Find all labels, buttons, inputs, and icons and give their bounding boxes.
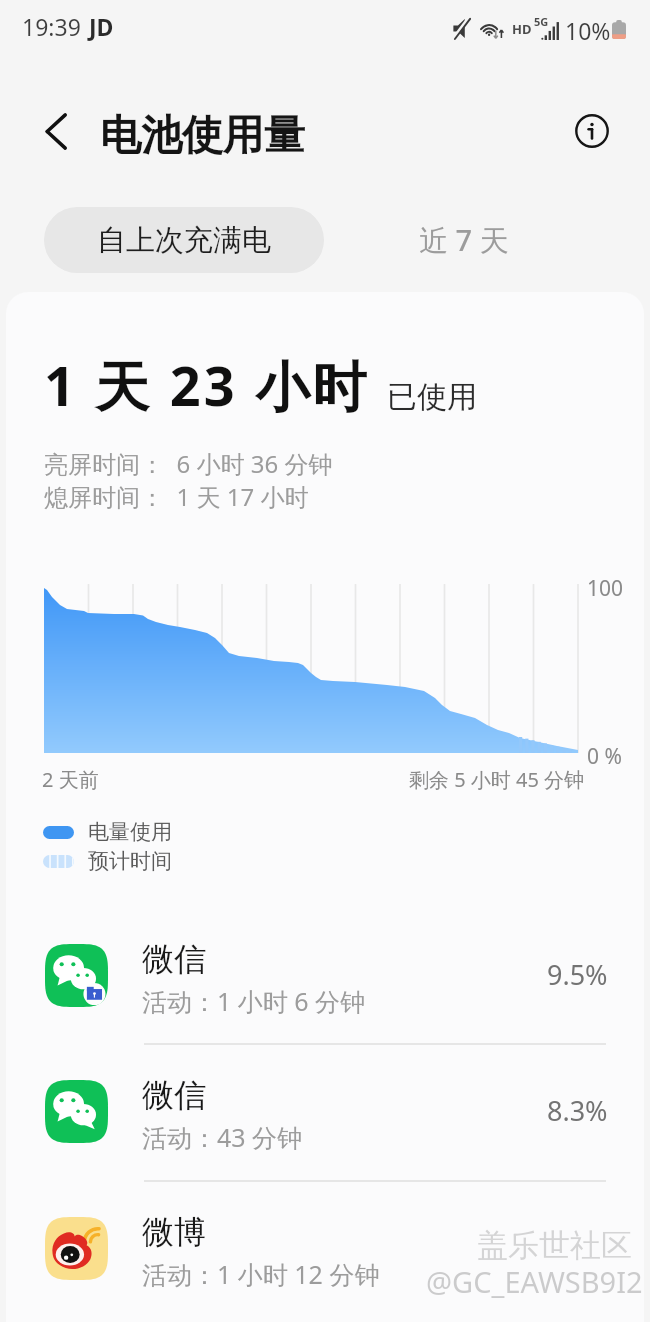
staticText: 自上次充满电	[97, 222, 271, 259]
staticText: 剩余 5 小时 45 分钟	[409, 766, 585, 793]
staticText: 盖乐世社区	[477, 1226, 632, 1265]
staticText: 10%	[565, 15, 611, 46]
other: Mobile signal	[541, 22, 560, 40]
staticText: HD	[512, 20, 532, 38]
staticText: @GC_EAWSB9I2	[426, 1262, 643, 1301]
other: Muted	[453, 18, 472, 39]
other: Battery 10 percent	[612, 20, 626, 39]
staticText: 1 天 23 小时	[44, 348, 370, 422]
staticText: 19:39	[22, 11, 81, 42]
staticText: 熄屏时间： 1 天 17 小时	[44, 480, 309, 513]
staticText: JD	[89, 11, 114, 42]
staticText: 微信	[142, 939, 206, 979]
staticText: 2 天前	[42, 766, 99, 793]
staticText: 活动：1 小时 6 分钟	[142, 984, 366, 1018]
staticText: 已使用	[387, 378, 477, 416]
staticText: 微博	[142, 1212, 206, 1252]
staticText: 亮屏时间： 6 小时 36 分钟	[44, 447, 333, 480]
staticText: 活动：43 分钟	[142, 1120, 303, 1154]
staticText: 0 %	[587, 742, 622, 771]
staticText: 电池使用量	[100, 110, 305, 162]
staticText: 微信	[142, 1075, 206, 1115]
staticText: 近 7 天	[419, 220, 509, 260]
button[interactable]: Information	[568, 107, 616, 155]
button[interactable]: 自上次充满电	[44, 207, 324, 273]
button[interactable]: 微信	[0, 1043, 650, 1180]
other: Wi-Fi	[479, 18, 507, 38]
button[interactable]: 微博	[0, 1180, 650, 1317]
button[interactable]: Back	[32, 107, 80, 155]
button[interactable]: 微信	[0, 907, 650, 1044]
button[interactable]: 近 7 天	[324, 207, 604, 273]
staticText: 预计时间	[88, 848, 172, 874]
staticText: 电量使用	[88, 819, 172, 845]
staticText: 8.3%	[547, 1092, 608, 1129]
staticText: 100	[587, 574, 624, 603]
staticText: 9.5%	[547, 956, 608, 993]
staticText: 5G	[534, 14, 549, 29]
staticText: 活动：1 小时 12 分钟	[142, 1257, 380, 1291]
